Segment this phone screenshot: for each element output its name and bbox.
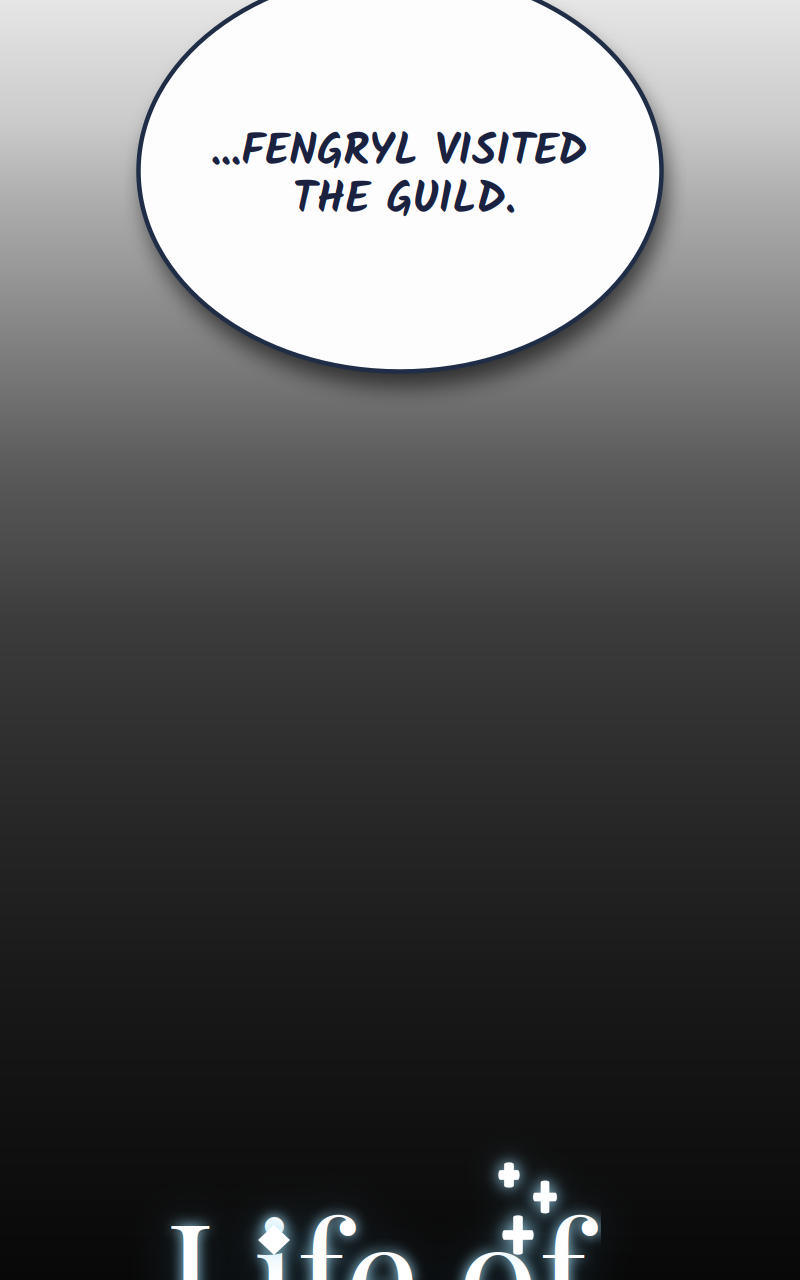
staticText: Life of — [165, 1169, 589, 1280]
staticText: THE GUILD. — [292, 166, 515, 236]
staticText: ...FENGRYL VISITED — [211, 118, 587, 188]
